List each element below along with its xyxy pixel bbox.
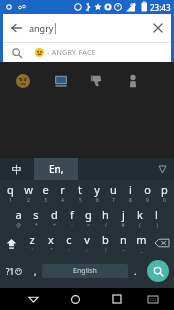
button[interactable]: n (114, 230, 132, 256)
staticText: e (42, 182, 49, 197)
button[interactable]: q (1, 180, 19, 205)
button[interactable]: Back (22, 288, 44, 310)
button[interactable]: e (37, 180, 54, 205)
button[interactable]: p (156, 180, 173, 205)
button[interactable]: Emoji (88, 72, 106, 90)
button[interactable]: j (114, 205, 131, 230)
staticText: 9 (146, 197, 149, 204)
button[interactable]: . (128, 256, 142, 286)
button[interactable]: m (132, 230, 150, 256)
staticText: h (102, 207, 109, 222)
button[interactable]: Keyboard (142, 288, 164, 310)
button[interactable]: u (105, 180, 122, 205)
button[interactable]: , (28, 256, 42, 286)
staticText: s (33, 207, 39, 222)
staticText: 3 (44, 197, 47, 204)
staticText: n (120, 232, 127, 247)
staticText: / (105, 222, 107, 229)
button[interactable]: r (54, 180, 71, 205)
staticText: r (60, 182, 65, 197)
button[interactable]: f (63, 205, 80, 230)
staticText: # (121, 222, 125, 229)
staticText: ; (86, 247, 88, 254)
button[interactable]: Recent apps (106, 288, 128, 310)
staticText: d (51, 207, 58, 222)
staticText: b (102, 232, 109, 247)
staticText: 4 (61, 197, 64, 204)
staticText: c (66, 232, 72, 247)
button[interactable]: x (41, 230, 60, 256)
button[interactable]: z (22, 230, 41, 256)
staticText: ?1 (6, 266, 15, 277)
button[interactable]: v (78, 230, 96, 256)
staticText: = (87, 222, 90, 229)
staticText: ~ (122, 247, 125, 254)
staticText: f (70, 207, 74, 222)
staticText: l (155, 207, 158, 222)
button[interactable]: c (60, 230, 78, 256)
button[interactable]: Emoji (124, 72, 142, 90)
staticText: y (94, 182, 100, 197)
staticText: ( (139, 222, 141, 229)
staticText: m (136, 232, 147, 247)
button[interactable]: - ANGRY FACE (3, 43, 171, 62)
button[interactable]: Emoji (14, 72, 32, 90)
staticText: 中 (12, 163, 22, 176)
button[interactable]: s (27, 205, 45, 230)
staticText: 1 (9, 197, 12, 204)
button[interactable]: English (42, 264, 128, 278)
staticText: _ (140, 247, 143, 254)
button[interactable]: d (45, 205, 63, 230)
staticText: z (29, 232, 35, 247)
button[interactable]: o (139, 180, 156, 205)
staticText: ' (31, 247, 33, 254)
staticText: k (137, 207, 143, 222)
button[interactable]: w (19, 180, 37, 205)
button[interactable]: h (97, 205, 114, 230)
staticText: q (7, 182, 14, 197)
button[interactable]: k (131, 205, 148, 230)
button[interactable]: En, (34, 158, 78, 180)
button[interactable]: l (148, 205, 165, 230)
staticText: 2 (27, 197, 30, 204)
staticText: : (68, 247, 70, 254)
staticText: 5 (79, 197, 82, 204)
staticText: ) (156, 222, 158, 229)
staticText: ! (105, 247, 107, 254)
staticText: 7 (112, 197, 115, 204)
staticText: 23:43 (150, 2, 171, 13)
button[interactable]: i (122, 180, 139, 205)
staticText: . (134, 265, 137, 277)
button[interactable]: Search (147, 260, 169, 282)
staticText: a (15, 207, 22, 222)
staticText: * (35, 222, 38, 229)
button[interactable]: t (71, 180, 88, 205)
staticText: - ANGRY FACE (47, 48, 96, 58)
button[interactable]: 中 (0, 158, 34, 180)
staticText: v (84, 232, 90, 247)
button[interactable]: ?1 (0, 256, 28, 286)
button[interactable]: g (80, 205, 97, 230)
staticText: - (71, 222, 73, 229)
button[interactable]: y (88, 180, 105, 205)
staticText: u (110, 182, 117, 197)
staticText: " (50, 247, 53, 254)
staticText: 8 (129, 197, 132, 204)
button[interactable]: Emoji (52, 72, 70, 90)
button[interactable]: b (96, 230, 114, 256)
staticText: + (53, 222, 56, 229)
staticText: t (78, 182, 82, 197)
staticText: English (73, 266, 97, 276)
staticText: @ (16, 222, 21, 229)
button[interactable]: Back (3, 15, 29, 41)
button[interactable]: More options (150, 158, 174, 180)
staticText: j (122, 207, 125, 222)
button[interactable]: Clear (145, 15, 171, 41)
button[interactable]: Home (64, 288, 86, 310)
button[interactable]: a (9, 205, 27, 230)
staticText: p (161, 182, 168, 197)
staticText: x (48, 232, 54, 247)
staticText: g (85, 207, 92, 222)
button[interactable]: Shift (0, 230, 22, 256)
button[interactable]: Backspace (150, 230, 174, 256)
